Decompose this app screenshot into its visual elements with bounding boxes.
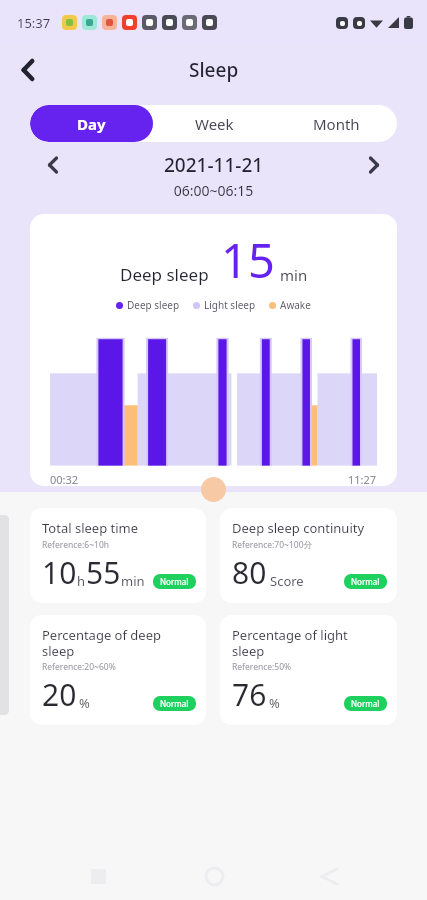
staticText: Awake bbox=[280, 298, 311, 312]
staticText: min bbox=[121, 572, 145, 590]
staticText: 00:32 bbox=[50, 472, 79, 486]
staticText: Normal bbox=[351, 698, 380, 709]
staticText: 80 bbox=[232, 552, 267, 593]
staticText: Reference:6~10h bbox=[42, 539, 110, 551]
staticText: 15 bbox=[221, 228, 275, 292]
button[interactable]: Total sleep time bbox=[30, 508, 206, 603]
staticText: Normal bbox=[351, 576, 380, 587]
staticText: 11:27 bbox=[348, 472, 377, 486]
staticText: Light sleep bbox=[204, 298, 256, 312]
staticText: Week bbox=[195, 114, 234, 134]
button[interactable]: Week bbox=[153, 105, 275, 142]
button[interactable]: Deep sleep continuity bbox=[220, 508, 397, 603]
staticText: Deep sleep bbox=[120, 263, 209, 286]
staticText: 2021-11-21 bbox=[164, 152, 264, 178]
staticText: Total sleep time bbox=[42, 519, 139, 537]
button[interactable]: Month bbox=[275, 105, 397, 142]
staticText: Day bbox=[77, 114, 106, 134]
staticText: min bbox=[280, 265, 308, 285]
staticText: Reference:70~100分 bbox=[232, 539, 313, 551]
staticText: 20 bbox=[42, 674, 77, 715]
staticText: Sleep bbox=[189, 57, 239, 83]
staticText: Reference:20~60% bbox=[42, 661, 116, 673]
staticText: Month bbox=[313, 114, 360, 134]
staticText: Deep sleep continuity bbox=[232, 519, 365, 537]
staticText: 15:37 bbox=[17, 14, 51, 32]
staticText: % bbox=[269, 694, 280, 712]
button[interactable]: Day bbox=[30, 105, 153, 142]
button[interactable]: Percentage of light sleep bbox=[220, 615, 397, 725]
staticText: % bbox=[79, 694, 90, 712]
button[interactable]: Previous day bbox=[38, 151, 68, 179]
staticText: Percentage of light sleep bbox=[232, 626, 348, 659]
button[interactable]: Next day bbox=[359, 151, 389, 179]
staticText: 55 bbox=[86, 552, 121, 593]
staticText: Normal bbox=[160, 698, 189, 709]
staticText: Score bbox=[270, 572, 304, 590]
staticText: Reference:50% bbox=[232, 661, 292, 673]
staticText: 76 bbox=[232, 674, 267, 715]
button[interactable]: Percentage of deep sleep bbox=[30, 615, 206, 725]
staticText: Normal bbox=[160, 576, 189, 587]
button[interactable]: Home bbox=[196, 858, 232, 894]
staticText: h bbox=[77, 572, 86, 590]
staticText: 10 bbox=[42, 552, 77, 593]
staticText: Deep sleep bbox=[127, 298, 180, 312]
button[interactable]: Back bbox=[8, 49, 50, 91]
button[interactable]: Recents bbox=[80, 858, 116, 894]
staticText: Percentage of deep sleep bbox=[42, 626, 161, 659]
staticText: 06:00~06:15 bbox=[0, 181, 427, 200]
